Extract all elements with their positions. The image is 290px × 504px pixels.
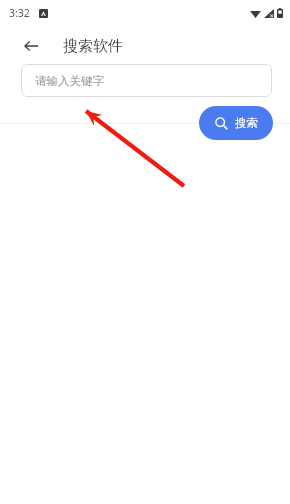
staticText: 请输入关键字	[35, 74, 104, 88]
staticText: 3:32	[9, 6, 30, 20]
button[interactable]: Back	[18, 33, 44, 59]
button[interactable]: 请输入关键字	[21, 64, 272, 97]
staticText: 搜索软件	[63, 37, 123, 56]
button[interactable]: 搜索	[199, 106, 273, 140]
staticText: 搜索	[235, 116, 258, 130]
